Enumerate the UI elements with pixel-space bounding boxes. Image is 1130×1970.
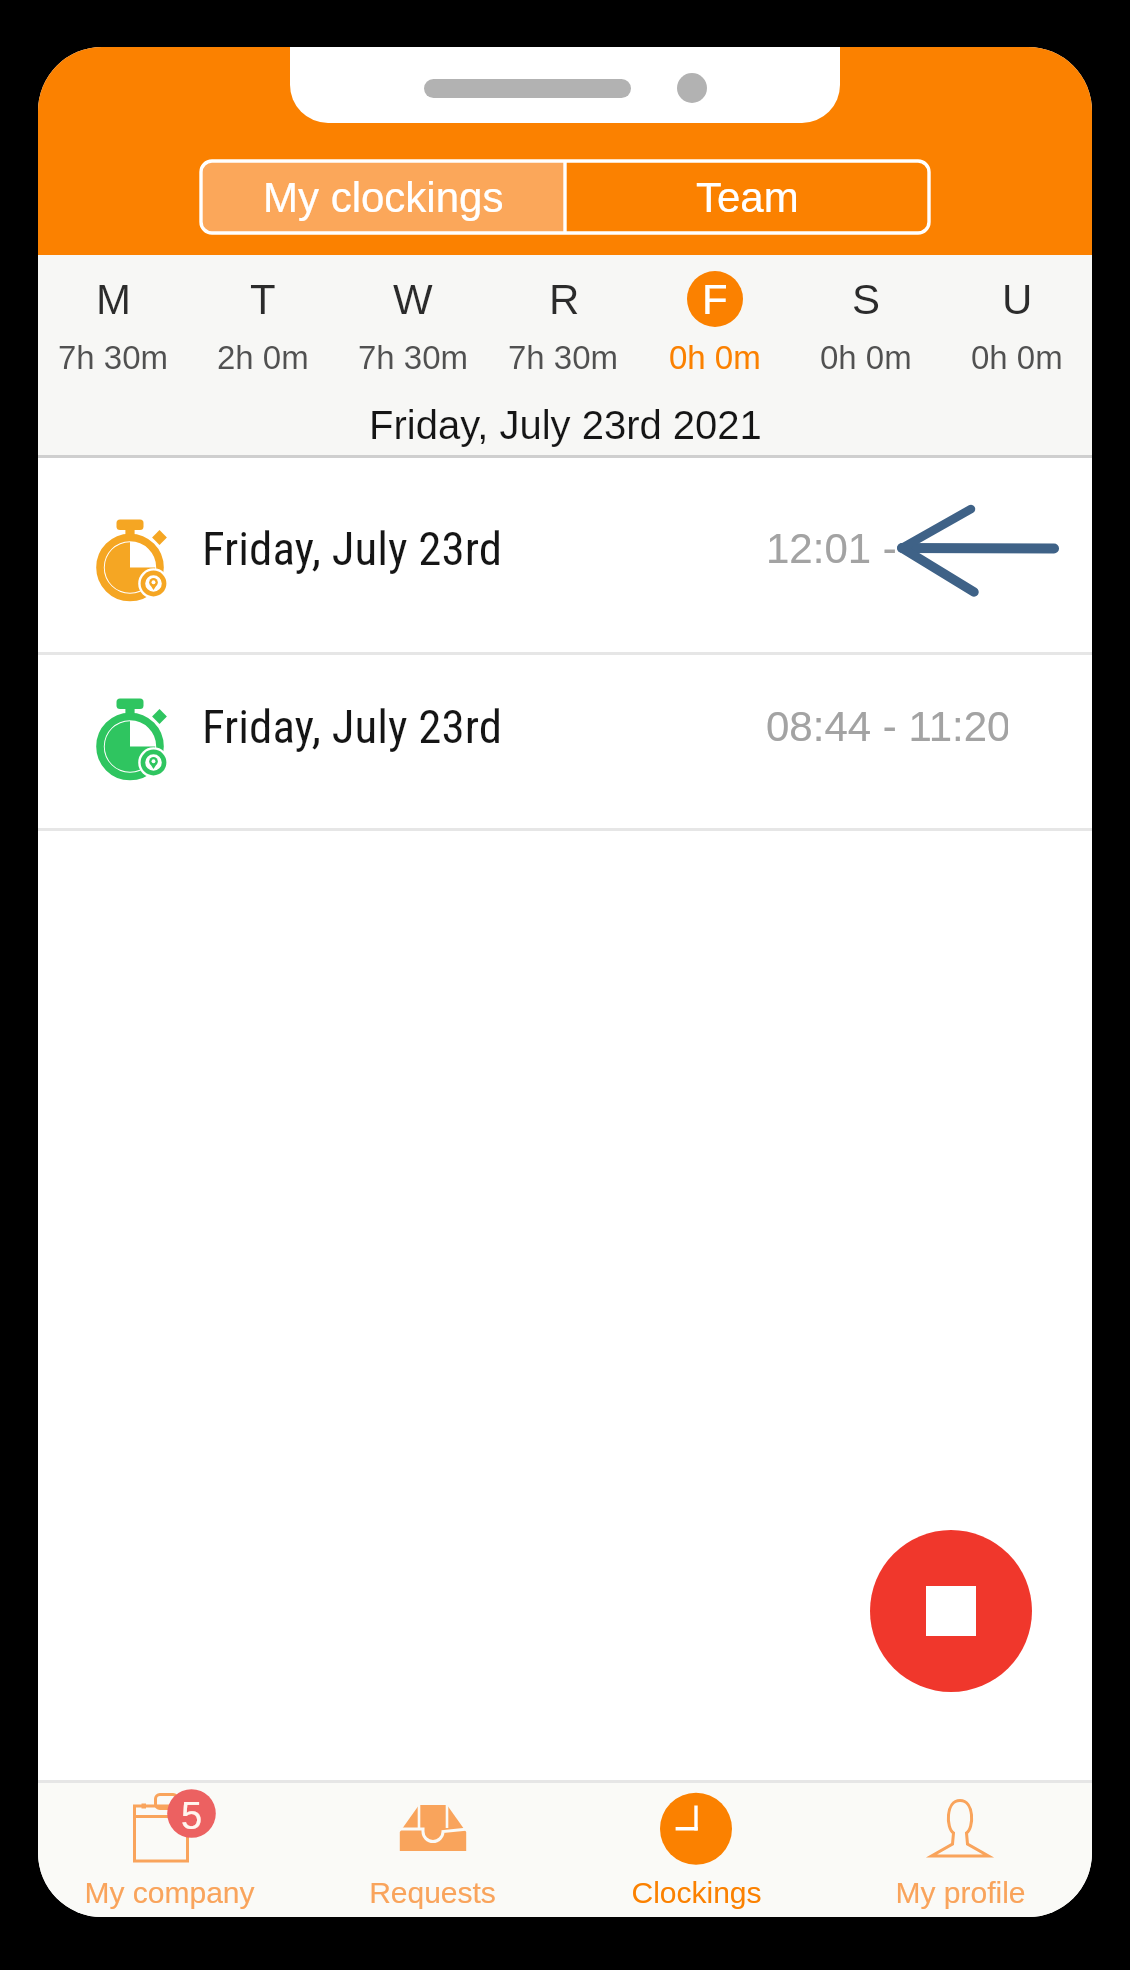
button[interactable]: R — [488, 255, 639, 392]
staticText: 7h 30m — [58, 339, 169, 376]
staticText: 12:01 - — [766, 525, 909, 572]
staticText: My profile — [895, 1876, 1026, 1910]
staticText: T — [250, 276, 276, 323]
staticText: M — [96, 276, 131, 323]
staticText: Friday, July 23rd — [202, 699, 502, 754]
button[interactable]: U — [941, 255, 1092, 392]
staticText: Friday, July 23rd — [202, 521, 502, 576]
button[interactable]: W — [338, 255, 488, 392]
staticText: 0h 0m — [820, 339, 912, 376]
button[interactable]: T — [188, 255, 338, 392]
staticText: U — [1002, 276, 1033, 323]
staticText: 0h 0m — [971, 339, 1063, 376]
button[interactable]: Friday, July 23rd — [38, 655, 1092, 828]
staticText: My clockings — [263, 174, 504, 221]
staticText: 7h 30m — [358, 339, 469, 376]
button[interactable]: Requests — [301, 1780, 564, 1917]
button[interactable]: Clockings — [564, 1780, 828, 1917]
staticText: My company — [84, 1876, 255, 1910]
button[interactable]: Friday, July 23rd — [38, 458, 1092, 652]
button[interactable]: Stop clocking — [870, 1530, 1032, 1692]
staticText: 5 — [181, 1795, 203, 1837]
button[interactable]: S — [790, 255, 941, 392]
staticText: 08:44 - 11:20 — [766, 703, 1008, 750]
staticText: Friday, July 23rd 2021 — [369, 403, 762, 448]
staticText: W — [393, 276, 433, 323]
staticText: Clockings — [631, 1876, 762, 1910]
button[interactable]: 5 — [38, 1780, 301, 1917]
staticText: 7h 30m — [508, 339, 619, 376]
staticText: Requests — [369, 1876, 496, 1910]
staticText: 2h 0m — [217, 339, 309, 376]
button[interactable]: M — [38, 255, 188, 392]
button[interactable]: My profile — [828, 1780, 1092, 1917]
staticText: 0h 0m — [669, 339, 761, 376]
staticText: S — [852, 276, 881, 323]
button[interactable]: F — [639, 255, 790, 392]
staticText: F — [702, 276, 728, 323]
staticText: Team — [696, 174, 799, 221]
staticText: R — [549, 276, 580, 323]
button[interactable]: Team — [565, 161, 929, 233]
button[interactable]: My clockings — [201, 161, 565, 233]
